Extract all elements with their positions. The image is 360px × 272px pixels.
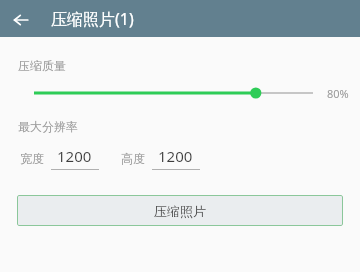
staticText: 80%: [327, 86, 349, 101]
button[interactable]: 宽度: [20, 146, 99, 170]
staticText: 最大分辨率: [18, 119, 78, 134]
staticText: 1200: [57, 146, 92, 166]
button[interactable]: 高度: [121, 146, 200, 170]
staticText: 压缩质量: [18, 58, 66, 73]
staticText: 高度: [121, 151, 145, 166]
button[interactable]: 80%: [0, 81, 360, 105]
staticText: 压缩照片: [154, 203, 206, 219]
staticText: 压缩照片(1): [51, 8, 134, 30]
staticText: 1200: [158, 146, 193, 166]
button[interactable]: Back: [6, 5, 36, 35]
button[interactable]: 压缩照片: [17, 195, 343, 226]
staticText: 宽度: [20, 151, 44, 166]
